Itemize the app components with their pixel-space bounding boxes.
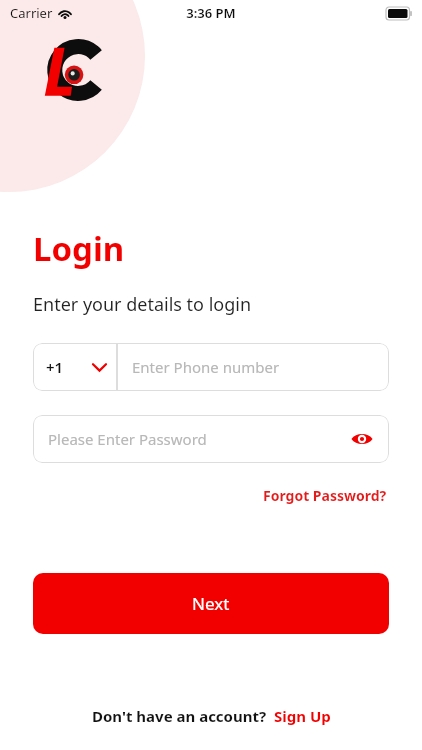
- staticText: Forgot Password?: [263, 486, 387, 505]
- staticText: Login: [33, 226, 125, 271]
- staticText: Enter your details to login: [33, 292, 252, 317]
- staticText: 3:36 PM: [186, 4, 236, 22]
- button[interactable]: +1: [33, 343, 117, 391]
- staticText: Enter Phone number: [132, 357, 280, 377]
- staticText: +1: [46, 357, 64, 377]
- staticText: Don't have an account?: [92, 706, 267, 726]
- button[interactable]: Next: [33, 573, 389, 634]
- button[interactable]: Please Enter Password: [33, 415, 389, 463]
- staticText: Please Enter Password: [48, 429, 207, 449]
- staticText: Sign Up: [274, 706, 331, 726]
- staticText: Next: [192, 592, 230, 615]
- button[interactable]: Sign Up: [274, 706, 331, 726]
- button[interactable]: Enter Phone number: [117, 343, 389, 391]
- staticText: Carrier: [10, 4, 53, 22]
- button[interactable]: Show password: [349, 426, 375, 452]
- button[interactable]: Forgot Password?: [261, 484, 389, 507]
